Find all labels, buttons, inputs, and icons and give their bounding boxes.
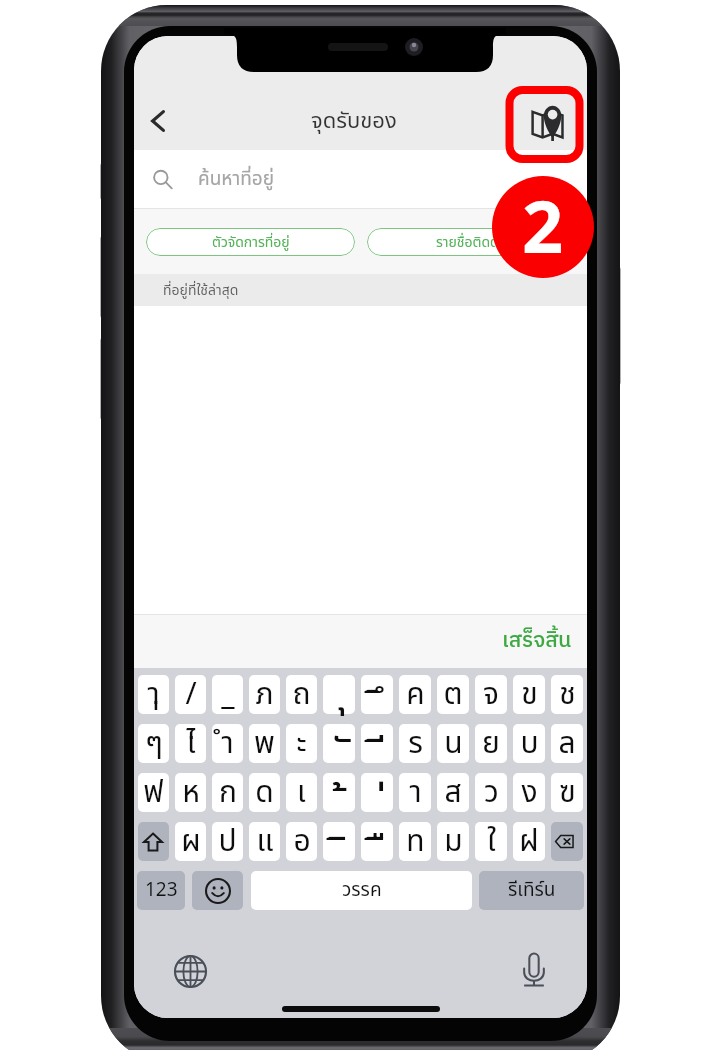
button[interactable]: รายชื่อติดต่อ — [367, 228, 576, 256]
staticText: พ — [254, 721, 275, 766]
staticText: _ — [221, 672, 235, 717]
button[interactable]: บ — [513, 724, 545, 763]
button[interactable]: ป — [212, 822, 243, 861]
staticText: จ — [483, 672, 499, 717]
button[interactable]: ะ — [286, 724, 317, 763]
button[interactable]: า — [399, 773, 431, 812]
staticText: ม — [444, 819, 463, 864]
staticText: ผ — [181, 819, 201, 864]
button[interactable]: ช — [551, 675, 583, 714]
staticText: 2 — [522, 176, 564, 274]
button[interactable] — [551, 822, 583, 861]
staticText: วรรค — [342, 876, 382, 905]
button[interactable]: ค — [399, 675, 431, 714]
button[interactable]: วรรค — [251, 871, 472, 910]
staticText: ใ — [487, 819, 496, 864]
button[interactable]: 123 — [137, 871, 185, 910]
button[interactable]: ย — [475, 724, 507, 763]
button[interactable]: ส — [437, 773, 469, 812]
button[interactable]: ี — [361, 724, 393, 763]
button[interactable] — [138, 822, 169, 861]
button[interactable]: / — [175, 675, 206, 714]
staticText: ก — [219, 770, 237, 815]
staticText: ข — [521, 672, 538, 717]
button[interactable]: ร — [399, 724, 431, 763]
staticText: รีเทิร์น — [508, 876, 556, 905]
button[interactable]: Dictate — [512, 947, 556, 991]
staticText: น — [444, 721, 463, 766]
staticText: ไ — [186, 721, 196, 766]
button[interactable]: ิ — [323, 822, 355, 861]
button[interactable]: ง — [513, 773, 545, 812]
button[interactable]: ๆ — [138, 724, 169, 763]
button[interactable]: ภ — [249, 675, 280, 714]
button[interactable]: พ — [249, 724, 280, 763]
button[interactable]: น — [437, 724, 469, 763]
button[interactable]: ข — [513, 675, 545, 714]
staticText: ฝ — [519, 819, 539, 864]
button[interactable]: Change keyboard language — [168, 949, 212, 993]
button[interactable]: ่ — [361, 773, 393, 812]
button[interactable]: ถ — [286, 675, 317, 714]
staticText: เ — [297, 770, 306, 815]
staticText: ค้นหาที่อยู่ — [198, 165, 274, 194]
staticText: ๆ — [145, 721, 163, 766]
button[interactable]: ึ — [361, 675, 393, 714]
button[interactable]: ห — [175, 773, 206, 812]
button[interactable]: Back — [134, 92, 182, 150]
staticText: 123 — [145, 876, 178, 905]
button[interactable]: แ — [249, 822, 280, 861]
staticText: ภ — [255, 672, 274, 717]
button[interactable]: ำ — [212, 724, 243, 763]
button[interactable]: รีเทิร์น — [479, 871, 584, 910]
button[interactable]: ก — [212, 773, 243, 812]
button[interactable]: ๅ — [138, 675, 169, 714]
staticText: ต — [443, 672, 463, 717]
button[interactable]: ื — [361, 822, 393, 861]
button[interactable]: ว — [475, 773, 507, 812]
button[interactable]: ั — [323, 724, 355, 763]
button[interactable]: จ — [475, 675, 507, 714]
staticText: ะ — [296, 721, 307, 766]
button[interactable]: อ — [286, 822, 317, 861]
button[interactable]: ไ — [175, 724, 206, 763]
staticText: ท — [406, 819, 425, 864]
staticText: ว — [484, 770, 499, 815]
button[interactable]: Map — [526, 92, 587, 150]
button[interactable]: ท — [399, 822, 431, 861]
staticText: ถ — [292, 672, 311, 717]
button[interactable] — [192, 871, 243, 910]
button[interactable]: ุ — [323, 675, 355, 714]
staticText: ง — [521, 770, 538, 815]
staticText: ป — [218, 819, 237, 864]
staticText: / — [185, 672, 197, 717]
button[interactable]: ฝ — [513, 822, 545, 861]
staticText: า — [409, 770, 422, 815]
button[interactable]: ล — [551, 724, 583, 763]
button[interactable]: ใ — [475, 822, 507, 861]
staticText: ด — [255, 770, 274, 815]
button[interactable]: เสร็จสิ้น — [487, 616, 587, 667]
staticText: รายชื่อติดต่อ — [436, 232, 508, 253]
staticText: ำ — [221, 721, 234, 766]
staticText: ย — [482, 721, 500, 766]
button[interactable]: ฃ — [551, 773, 583, 812]
staticText: อ — [293, 819, 311, 864]
staticText: ฟ — [143, 770, 164, 815]
staticText: ที่อยู่ที่ใช้ล่าสุด — [163, 280, 239, 301]
button[interactable]: ้ — [323, 773, 355, 812]
button[interactable]: _ — [212, 675, 243, 714]
staticText: ค — [406, 672, 425, 717]
button[interactable]: ต — [437, 675, 469, 714]
button[interactable]: ตัวจัดการที่อยู่ — [146, 228, 355, 256]
button[interactable]: เ — [286, 773, 317, 812]
staticText: แ — [256, 819, 274, 864]
button[interactable]: ม — [437, 822, 469, 861]
staticText: เสร็จสิ้น — [502, 624, 572, 659]
button[interactable]: ผ — [175, 822, 206, 861]
button[interactable]: ฟ — [138, 773, 169, 812]
button[interactable]: ด — [249, 773, 280, 812]
staticText: ล — [558, 721, 576, 766]
staticText: ส — [444, 770, 462, 815]
staticText: บ — [520, 721, 539, 766]
